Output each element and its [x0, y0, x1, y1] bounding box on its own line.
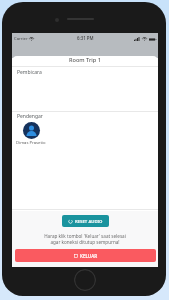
button[interactable]: Dimas Prasetio: [16, 122, 46, 146]
staticText: Carrier: [14, 36, 28, 42]
staticText: KELUAR: [80, 253, 98, 259]
staticText: 6:31 PM: [77, 35, 94, 41]
staticText: Pembicara: [17, 69, 42, 76]
button[interactable]: Reset audio: [62, 215, 109, 227]
other: Reset audio: [68, 219, 73, 224]
staticText: Dimas Prasetio: [16, 140, 46, 146]
staticText: Harap klik tombol 'Keluar' saat selesai …: [12, 233, 158, 245]
button[interactable]: Keluar: [15, 249, 156, 262]
staticText: RESET AUDIO: [75, 218, 103, 224]
staticText: Pendengar: [17, 113, 43, 120]
staticText: Room Trip 1: [69, 56, 101, 64]
other: Keluar: [74, 254, 78, 258]
